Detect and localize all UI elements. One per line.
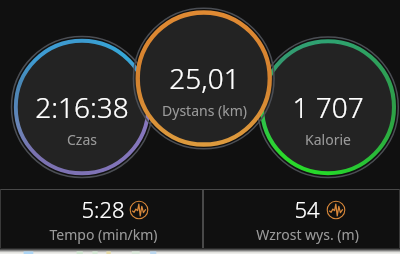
staticText: Czas xyxy=(67,130,97,149)
staticText: Tempo (min/km) xyxy=(49,225,158,244)
other: Heart rate xyxy=(129,200,149,220)
other: Heart rate xyxy=(326,200,346,220)
button[interactable]: 5:28 xyxy=(0,190,203,248)
staticText: Kalorie xyxy=(305,130,351,149)
staticText: 1 707 xyxy=(292,88,364,126)
staticText: 2:16:38 xyxy=(35,88,129,126)
button[interactable]: 2:16:38 xyxy=(7,55,157,159)
button[interactable]: 1 707 xyxy=(253,55,400,159)
staticText: 25,01 xyxy=(169,59,240,97)
staticText: Dystans (km) xyxy=(162,101,247,120)
staticText: 54 xyxy=(294,194,320,222)
staticText: Wzrost wys. (m) xyxy=(256,225,359,244)
button[interactable]: 54 xyxy=(203,190,400,248)
staticText: 5:28 xyxy=(81,194,125,222)
button[interactable]: 25,01 xyxy=(129,26,279,130)
